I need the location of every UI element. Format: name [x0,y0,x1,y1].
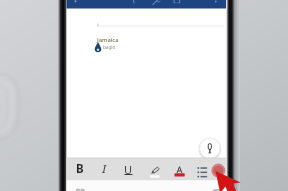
button[interactable]: Search [150,0,162,9]
button[interactable]: Undo [132,0,144,9]
button[interactable]: Present [169,0,181,9]
button[interactable]: Bulleted list [190,158,214,180]
staticText: U [124,162,133,177]
button[interactable]: Italic [92,158,116,180]
button[interactable]: More options [193,0,205,9]
staticText: B [76,161,84,177]
button[interactable]: Underline [116,158,140,180]
button[interactable]: Voice typing [199,137,220,158]
staticText: bagio [103,44,116,50]
button[interactable]: Bold [68,158,92,180]
staticText: I [102,161,107,177]
button[interactable]: Highlight [143,158,167,180]
button[interactable]: Text colour [167,158,191,180]
staticText: Jamaica [97,36,119,44]
